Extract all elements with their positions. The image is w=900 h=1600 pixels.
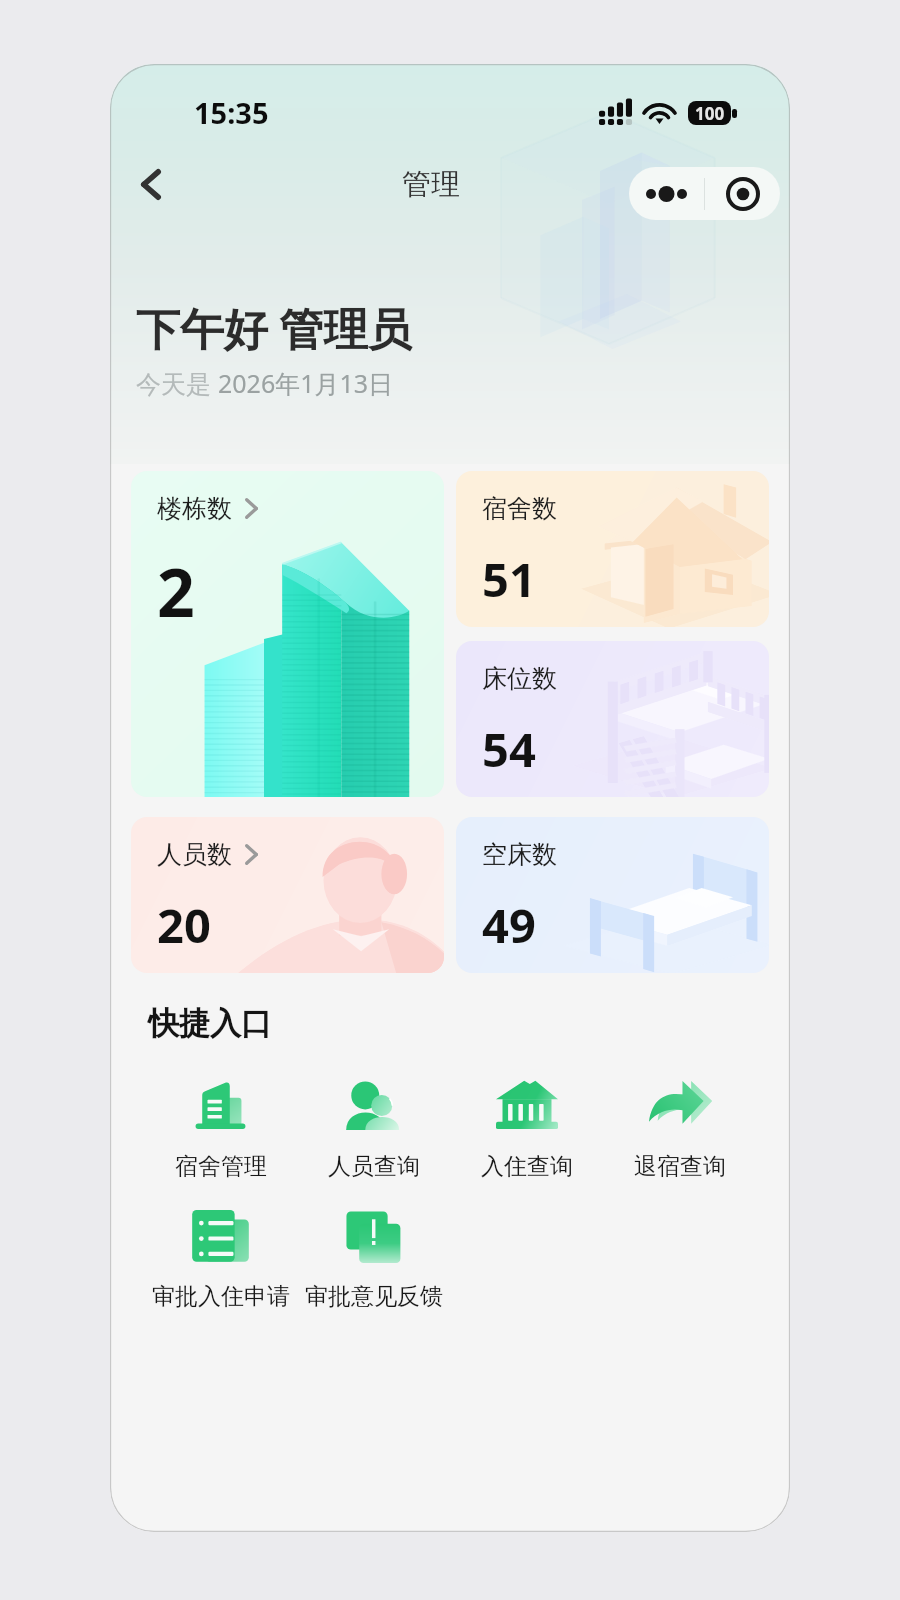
button[interactable]: Approval feedback [297, 1205, 450, 1311]
button[interactable]: 床位数 [456, 641, 769, 797]
button[interactable]: Close mini program [705, 167, 780, 220]
staticText: 床位数 [482, 663, 557, 694]
staticText: 20 [157, 893, 211, 957]
button[interactable]: 空床数 [456, 817, 769, 973]
button[interactable]: Dormitory management [144, 1075, 297, 1181]
staticText: 人员查询 [328, 1152, 420, 1181]
button[interactable]: Check-out lookup [603, 1075, 756, 1181]
staticText: 15:35 [194, 93, 269, 132]
button[interactable]: 人员数 [131, 817, 444, 973]
staticText: 100 [695, 102, 725, 125]
staticText: 宿舍管理 [175, 1152, 267, 1181]
other: People lookup [345, 1078, 402, 1131]
staticText: 今天是 [136, 366, 218, 400]
other: Check-out lookup [649, 1078, 711, 1130]
other: Approval feedback [345, 1210, 403, 1263]
staticText: 审批意见反馈 [305, 1282, 443, 1311]
staticText: 退宿查询 [634, 1152, 726, 1181]
staticText: 54 [482, 717, 536, 781]
staticText: 入住查询 [481, 1152, 573, 1181]
staticText: 空床数 [482, 839, 557, 870]
staticText: 审批入住申请 [152, 1282, 290, 1311]
staticText: 51 [482, 547, 536, 611]
staticText: 2 [157, 546, 195, 636]
staticText: 楼栋数 [157, 493, 232, 524]
button[interactable]: Back [123, 156, 179, 212]
button[interactable]: More options [629, 167, 704, 220]
button[interactable]: 楼栋数 [131, 471, 444, 797]
staticText: 人员数 [157, 839, 232, 870]
staticText: 2026年1月13日 [218, 366, 394, 400]
other: Approve applications [191, 1208, 250, 1264]
button[interactable]: 宿舍数 [456, 471, 769, 627]
button[interactable]: People lookup [297, 1075, 450, 1181]
button[interactable]: Approve applications [144, 1205, 297, 1311]
staticText: 下午好 管理员 [136, 298, 412, 358]
staticText: 宿舍数 [482, 493, 557, 524]
staticText: 49 [482, 893, 536, 957]
other: Check-in lookup [496, 1077, 558, 1131]
staticText: 管理 [402, 166, 460, 203]
staticText: 快捷入口 [148, 1004, 272, 1043]
other: Dormitory management [194, 1079, 247, 1131]
button[interactable]: Check-in lookup [450, 1075, 603, 1181]
